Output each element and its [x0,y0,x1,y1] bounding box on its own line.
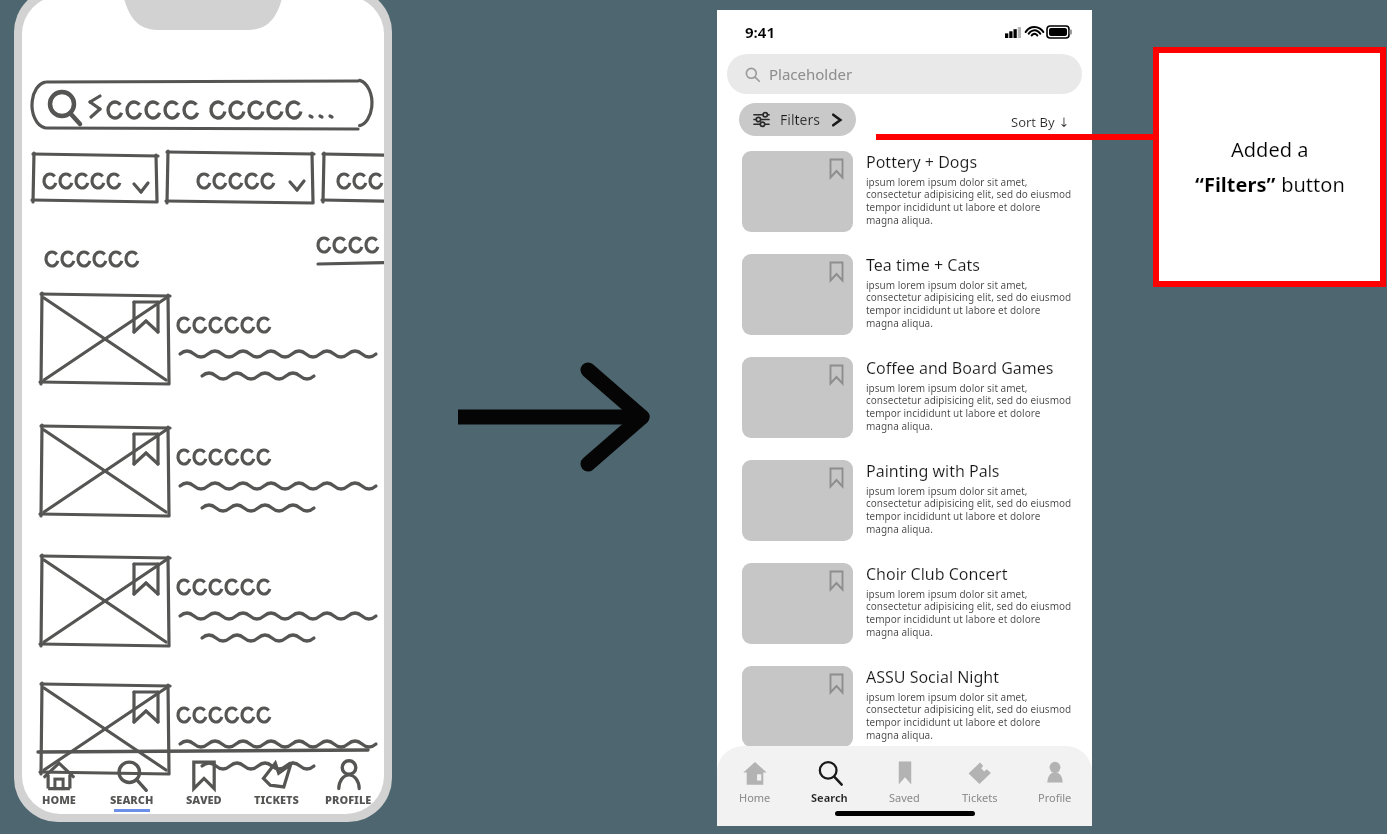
other: Save [829,673,844,694]
staticText: Home [739,790,771,805]
button[interactable]: Save [717,556,1092,659]
staticText: Sort By [1011,113,1055,131]
button[interactable]: Save [717,144,1092,247]
staticText: Saved [889,790,920,805]
staticText: ipsum lorem ipsum dolor sit amet, consec… [866,484,1074,536]
button[interactable]: SEARCH [95,758,168,814]
other: Save [829,467,844,488]
staticText: HOME [42,792,76,807]
staticText: Tickets [962,790,998,805]
button[interactable]: Tickets [942,760,1017,814]
button[interactable]: Home [717,760,792,814]
staticText: ipsum lorem ipsum dolor sit amet, consec… [866,175,1074,227]
staticText: PROFILE [325,792,372,807]
staticText: SEARCH [110,792,154,807]
staticText: Coffee and Board Games [866,357,1054,379]
staticText: Filters [780,110,820,129]
staticText: Painting with Pals [866,460,1000,482]
button[interactable]: Search [792,760,867,814]
button[interactable]: Save [717,659,1092,762]
staticText: Pottery + Dogs [866,151,978,173]
staticText: ipsum lorem ipsum dolor sit amet, consec… [866,381,1074,433]
button[interactable]: PROFILE [312,758,384,814]
staticText: ↓ [1055,113,1070,131]
staticText: TICKETS [254,792,299,807]
staticText: Placeholder [769,64,853,84]
staticText: SAVED [186,792,222,807]
button[interactable]: Profile [1017,760,1092,814]
staticText: ipsum lorem ipsum dolor sit amet, consec… [866,587,1074,639]
staticText: button [1276,171,1345,198]
staticText: ASSU Social Night [866,666,999,688]
button[interactable]: TICKETS [240,758,312,814]
other: Save [829,364,844,385]
button[interactable]: Save [717,350,1092,453]
staticText: Added a [1231,136,1309,163]
staticText: Profile [1038,790,1072,805]
button[interactable]: Sort By [1011,113,1070,131]
staticText: Tea time + Cats [866,254,980,276]
staticText: Choir Club Concert [866,563,1008,585]
staticText: ipsum lorem ipsum dolor sit amet, consec… [866,690,1074,742]
button[interactable]: Saved [867,760,942,814]
button[interactable]: Save [717,453,1092,556]
other: Save [829,570,844,591]
button[interactable]: Filters [739,103,856,136]
other: Save [829,158,844,179]
button[interactable]: Placeholder [727,54,1082,94]
button[interactable]: Save [717,247,1092,350]
button[interactable]: HOME [22,758,95,814]
staticText: Search [811,790,848,805]
other: Save [829,261,844,282]
staticText: “Filters” [1195,171,1276,198]
staticText: ipsum lorem ipsum dolor sit amet, consec… [866,278,1074,330]
button[interactable]: SAVED [168,758,240,814]
staticText: 9:41 [745,22,775,42]
